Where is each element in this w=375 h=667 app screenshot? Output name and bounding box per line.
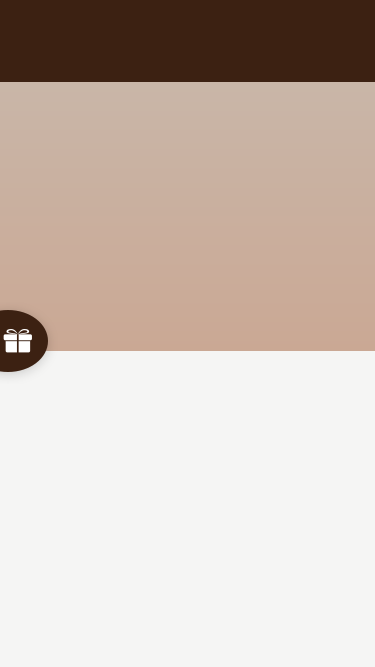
button[interactable]: Gifts — [0, 310, 48, 372]
